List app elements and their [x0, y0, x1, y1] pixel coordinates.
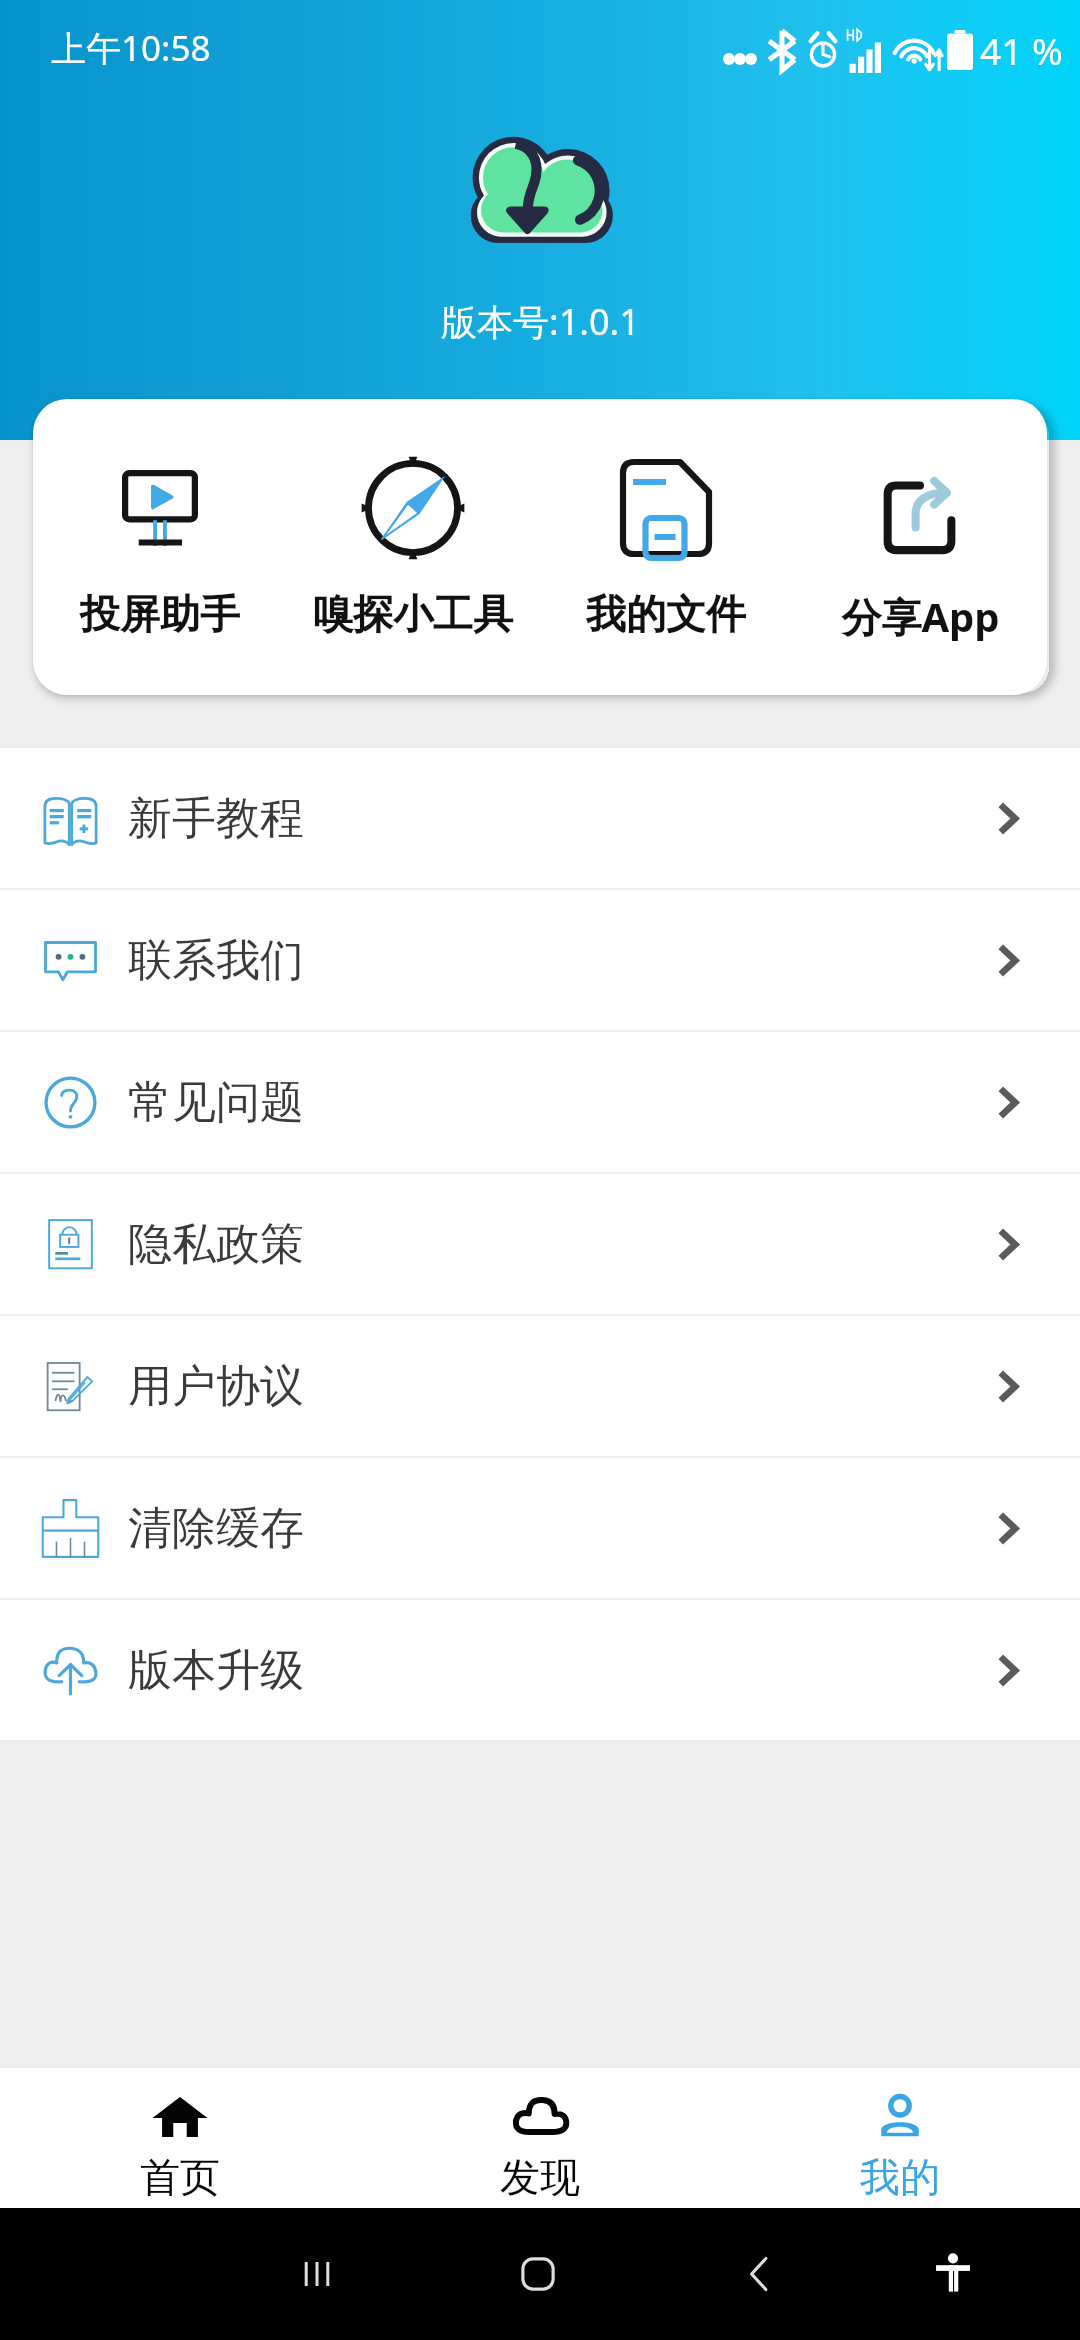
staticText: 隐私政策: [128, 1217, 304, 1272]
button[interactable]: Recents: [262, 2219, 372, 2329]
button[interactable]: 常见问题: [0, 1032, 1080, 1172]
button[interactable]: 新手教程: [0, 748, 1080, 888]
button[interactable]: 我的: [720, 2068, 1080, 2208]
button[interactable]: Home: [483, 2219, 593, 2329]
staticText: 投屏助手: [80, 589, 240, 639]
staticText: 我的: [860, 2152, 940, 2202]
staticText: 联系我们: [128, 933, 304, 988]
button[interactable]: 首页: [0, 2068, 360, 2208]
staticText: 嗅探小工具: [313, 589, 513, 639]
button[interactable]: Accessibility: [898, 2219, 1008, 2329]
button[interactable]: 联系我们: [0, 890, 1080, 1030]
staticText: 版本号:1.0.1: [441, 297, 640, 346]
button[interactable]: 我的文件: [539, 399, 793, 695]
staticText: 41 %: [980, 25, 1063, 75]
staticText: 分享App: [841, 589, 1000, 644]
staticText: 我的文件: [586, 589, 746, 639]
staticText: 上午10:58: [51, 24, 211, 72]
button[interactable]: 嗅探小工具: [286, 399, 539, 695]
staticText: 发现: [500, 2152, 580, 2202]
staticText: 清除缓存: [128, 1501, 304, 1556]
staticText: 用户协议: [128, 1359, 304, 1414]
staticText: 新手教程: [128, 791, 304, 846]
staticText: 首页: [140, 2152, 220, 2202]
button[interactable]: Back: [705, 2219, 815, 2329]
button[interactable]: 用户协议: [0, 1316, 1080, 1456]
button[interactable]: 清除缓存: [0, 1458, 1080, 1598]
button[interactable]: 发现: [360, 2068, 720, 2208]
staticText: 常见问题: [128, 1075, 304, 1130]
button[interactable]: 版本升级: [0, 1600, 1080, 1740]
button[interactable]: 分享App: [793, 399, 1047, 695]
button[interactable]: 隐私政策: [0, 1174, 1080, 1314]
button[interactable]: 投屏助手: [33, 399, 286, 695]
staticText: 版本升级: [128, 1643, 304, 1698]
